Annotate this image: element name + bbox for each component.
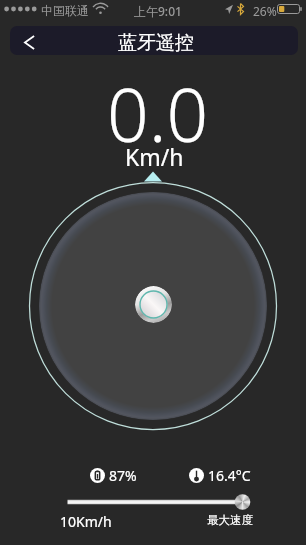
button[interactable]: Back [10, 28, 48, 55]
staticText: 16.4°C [208, 466, 251, 485]
staticText: 上午9:01 [134, 3, 182, 19]
staticText: 中国联通 [41, 3, 89, 18]
staticText: 26% [253, 3, 277, 19]
staticText: Km/h [125, 141, 184, 172]
button[interactable]: Power [135, 286, 172, 323]
staticText: 最大速度 [207, 513, 253, 527]
staticText: 87% [109, 466, 137, 485]
staticText: 0.0 [107, 64, 209, 163]
button[interactable]: Max speed slider [60, 492, 246, 512]
button[interactable]: 87% [90, 466, 137, 485]
button[interactable]: 16.4°C [189, 466, 251, 485]
staticText: 蓝牙遥控 [118, 31, 194, 55]
staticText: 10Km/h [60, 512, 112, 531]
